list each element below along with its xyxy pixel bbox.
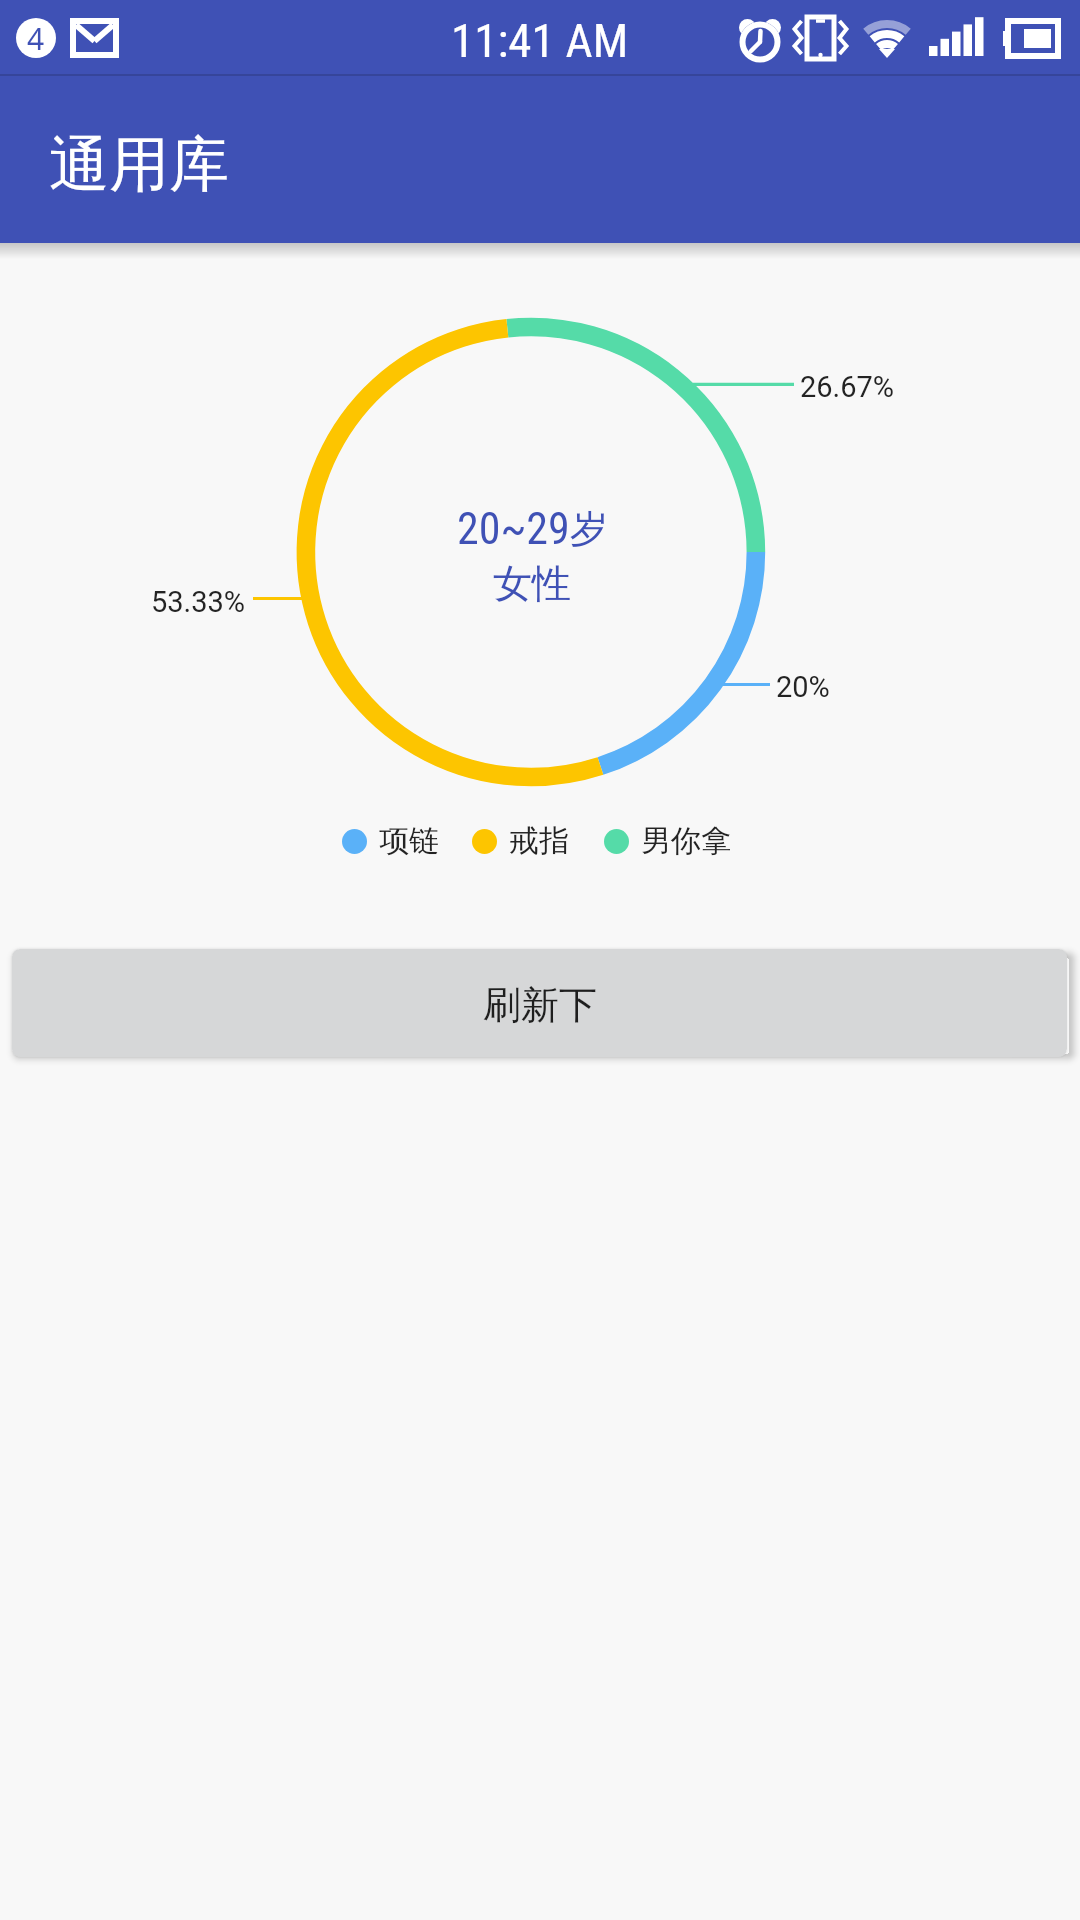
button[interactable]: 项链 (342, 822, 439, 860)
staticText: 通用库 (49, 127, 229, 203)
staticText: 4 (27, 18, 45, 58)
staticText: 戒指 (509, 822, 569, 860)
button[interactable]: 戒指 (472, 822, 569, 860)
staticText: 刷新下 (483, 981, 597, 1029)
staticText: 11:41 AM (451, 13, 629, 68)
other: Unread mail (70, 17, 119, 59)
button[interactable]: 刷新下 (12, 949, 1067, 1057)
button[interactable]: 男你拿 (604, 822, 731, 860)
staticText: 岁 (570, 505, 608, 553)
other: Mobile signal (927, 18, 989, 58)
other: Battery (1000, 18, 1062, 58)
other: Wi-Fi signal (855, 16, 919, 60)
staticText: 26.67% (800, 370, 895, 404)
staticText: 男你拿 (641, 822, 731, 860)
staticText: 20% (776, 670, 830, 704)
other: Alarm set (738, 10, 784, 66)
staticText: 女性 (493, 559, 571, 608)
staticText: 53.33% (151, 585, 246, 619)
other: 4 notifications (16, 18, 56, 58)
staticText: 20~29 (457, 503, 570, 555)
staticText: 项链 (379, 822, 439, 860)
other: Vibrate mode (794, 14, 848, 62)
button[interactable]: Age distribution pie chart (297, 318, 765, 786)
